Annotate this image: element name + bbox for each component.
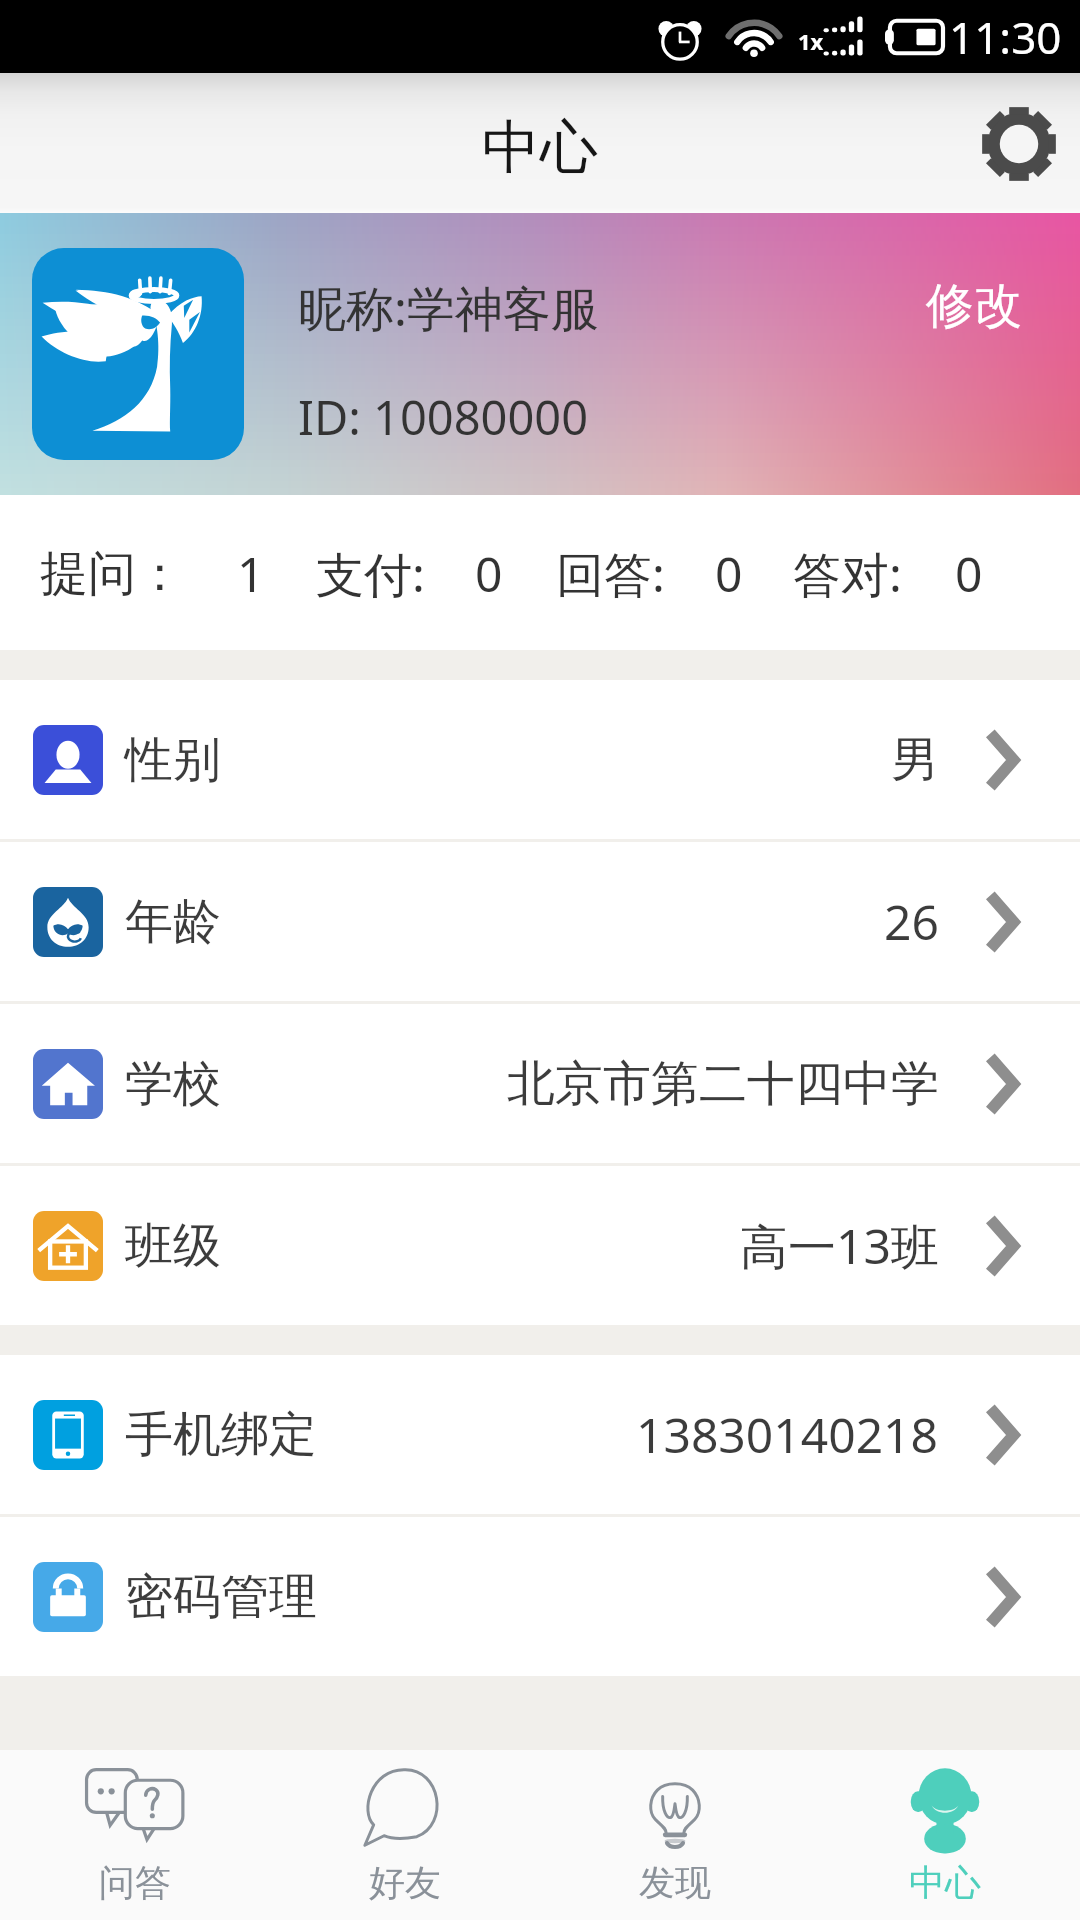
staticText: 0	[715, 541, 743, 606]
button[interactable]: Avatar	[32, 248, 244, 460]
staticText: 中心	[909, 1860, 981, 1905]
staticText: 发现	[639, 1860, 711, 1905]
staticText: 13830140218	[636, 1402, 939, 1467]
staticText: 班级	[125, 1216, 221, 1276]
staticText: 好友	[369, 1860, 441, 1905]
button[interactable]: 发现	[540, 1750, 810, 1920]
staticText: 性别	[125, 730, 221, 790]
staticText: 0	[475, 541, 503, 606]
staticText: 高一13班	[740, 1213, 939, 1279]
staticText: 学校	[125, 1054, 221, 1114]
staticText: 问答	[99, 1860, 171, 1905]
button[interactable]: 年龄	[0, 842, 1080, 1001]
staticText: 26	[884, 889, 939, 954]
staticText: 回答:	[556, 541, 665, 607]
staticText: 1x	[798, 26, 824, 56]
staticText: 中心	[482, 111, 598, 184]
staticText: 昵称:学神客服	[298, 275, 599, 341]
staticText: 提问：	[40, 544, 184, 604]
staticText: ID: 10080000	[298, 385, 589, 449]
button[interactable]: 性别	[0, 680, 1080, 839]
staticText: 1	[237, 541, 265, 606]
staticText: 手机绑定	[125, 1405, 317, 1465]
button[interactable]: Settings	[973, 98, 1065, 190]
button[interactable]: 班级	[0, 1166, 1080, 1325]
button[interactable]: 修改	[926, 276, 1022, 336]
staticText: 0	[955, 541, 983, 606]
staticText: 年龄	[125, 892, 221, 952]
button[interactable]: 好友	[270, 1750, 540, 1920]
staticText: 北京市第二十四中学	[507, 1054, 939, 1114]
button[interactable]: 手机绑定	[0, 1355, 1080, 1514]
staticText: 密码管理	[125, 1567, 317, 1627]
staticText: 11:30	[949, 7, 1062, 67]
button[interactable]: 学校	[0, 1004, 1080, 1163]
staticText: 支付:	[316, 541, 425, 607]
button[interactable]: 中心	[810, 1750, 1080, 1920]
button[interactable]: 密码管理	[0, 1517, 1080, 1676]
staticText: 修改	[926, 276, 1022, 336]
staticText: 男	[891, 730, 939, 790]
button[interactable]: 问答	[0, 1750, 270, 1920]
staticText: 答对:	[793, 541, 902, 607]
